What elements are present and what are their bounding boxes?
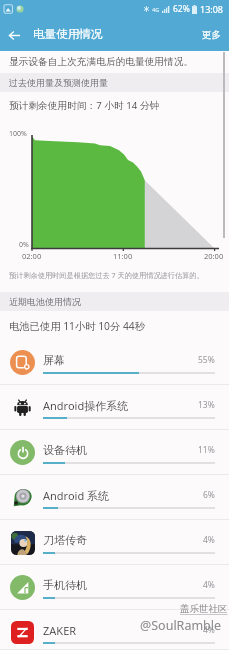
staticText: 55% (198, 354, 215, 366)
staticText: 4% (203, 579, 215, 591)
staticText: 4% (203, 624, 215, 636)
staticText: 0% (19, 240, 29, 250)
staticText: 11:00 (113, 251, 133, 261)
button[interactable]: 屏幕 (0, 340, 229, 385)
staticText: Android 系统 (43, 488, 110, 503)
staticText: 手机待机 (43, 578, 87, 592)
staticText: 预计剩余使用时间是根据您过去 7 天的使用情况进行估算的。 (9, 270, 204, 280)
staticText: 屏幕 (43, 353, 65, 367)
staticText: 过去使用量及预测使用量 (9, 77, 108, 88)
staticText: Android操作系统 (43, 398, 129, 413)
button[interactable]: 设备待机 (0, 430, 229, 475)
staticText: 13:08 (200, 3, 224, 15)
staticText: 盖乐世社区 (180, 603, 228, 615)
staticText: 刀塔传奇 (43, 533, 87, 547)
staticText: 4G (152, 6, 160, 13)
staticText: @SoulRamble (140, 617, 222, 634)
staticText: ZAKER (43, 623, 77, 638)
staticText: 4% (203, 534, 215, 546)
button[interactable]: 手机待机 (0, 565, 229, 610)
button[interactable]: Android操作系统 (0, 385, 229, 430)
staticText: 更多 (202, 29, 221, 41)
staticText: 11% (198, 444, 215, 456)
staticText: 02:00 (22, 251, 42, 261)
button[interactable]: 更多 (194, 22, 229, 48)
button[interactable]: Android 系统 (0, 475, 229, 520)
staticText: 62% (173, 3, 190, 15)
staticText: 预计剩余使用时间：7 小时 14 分钟 (9, 99, 160, 112)
staticText: 13% (198, 399, 215, 411)
staticText: 电池已使用 11小时 10分 44秒 (9, 319, 146, 333)
staticText: 100% (9, 129, 27, 139)
staticText: 20:00 (204, 251, 224, 261)
staticText: 近期电池使用情况 (9, 296, 81, 307)
staticText: 电量使用情况 (33, 27, 103, 42)
button[interactable]: Back (0, 21, 28, 49)
button[interactable]: ZAKER (0, 610, 229, 650)
staticText: 6% (203, 489, 215, 501)
staticText: 显示设备自上次充满电后的电量使用情况。 (9, 56, 194, 68)
button[interactable]: 刀塔传奇 (0, 520, 229, 565)
staticText: 设备待机 (43, 443, 87, 457)
